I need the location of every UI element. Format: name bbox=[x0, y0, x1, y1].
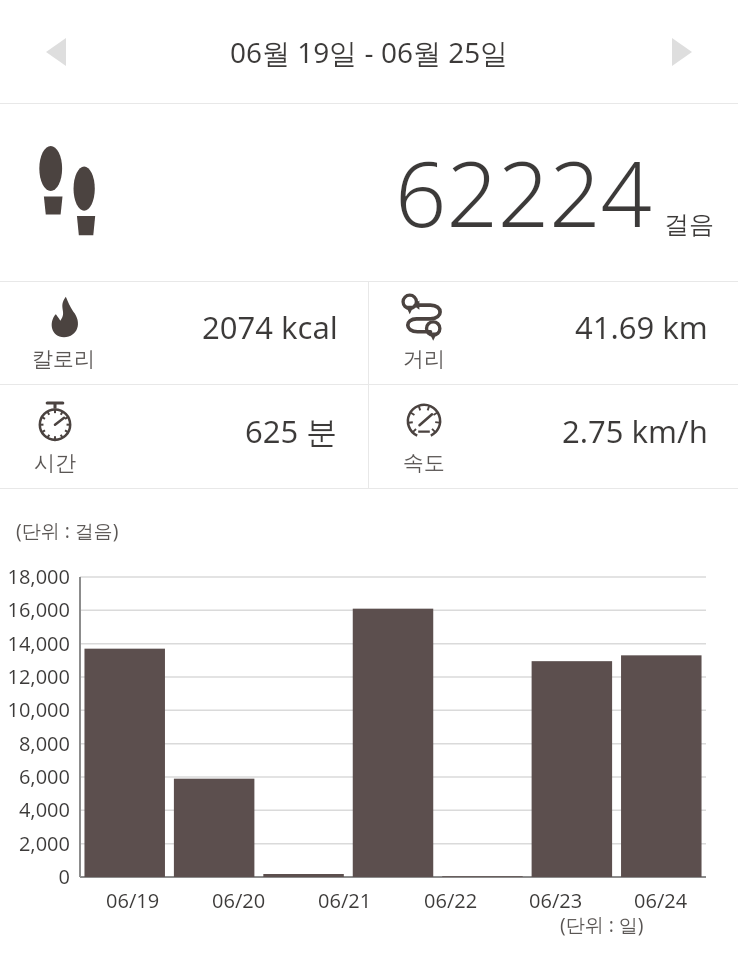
button[interactable]: 62224 bbox=[0, 104, 738, 281]
staticText: 41.69 km bbox=[575, 306, 708, 348]
staticText: 06월 19일 - 06월 25일 bbox=[230, 33, 509, 71]
button[interactable]: Previous week bbox=[20, 16, 92, 88]
staticText: 06/20 bbox=[212, 887, 266, 914]
staticText: 06/24 bbox=[634, 887, 688, 914]
staticText: 18,000 bbox=[0, 563, 70, 590]
staticText: 걸음 bbox=[664, 209, 714, 240]
staticText: (단위 : 걸음) bbox=[16, 518, 119, 544]
staticText: 2.75 km/h bbox=[562, 410, 708, 452]
staticText: 4,000 bbox=[0, 796, 70, 823]
staticText: 속도 bbox=[403, 450, 445, 476]
staticText: 62224 bbox=[395, 131, 652, 254]
staticText: 2,000 bbox=[0, 830, 70, 857]
staticText: 2074 kcal bbox=[202, 306, 338, 348]
staticText: 06/22 bbox=[424, 887, 478, 914]
button[interactable]: 속도 bbox=[369, 385, 738, 488]
staticText: 시간 bbox=[34, 450, 76, 476]
staticText: 12,000 bbox=[0, 663, 70, 690]
staticText: 6,000 bbox=[0, 763, 70, 790]
staticText: 06/19 bbox=[106, 887, 160, 914]
staticText: 16,000 bbox=[0, 596, 70, 623]
staticText: 거리 bbox=[403, 346, 445, 372]
staticText: 0 bbox=[0, 863, 70, 890]
staticText: 14,000 bbox=[0, 630, 70, 657]
staticText: 06/21 bbox=[318, 887, 372, 914]
button[interactable]: 거리 bbox=[369, 282, 738, 384]
button[interactable]: 칼로리 bbox=[0, 282, 368, 384]
staticText: (단위 : 일) bbox=[560, 912, 644, 938]
staticText: 10,000 bbox=[0, 696, 70, 723]
staticText: 625 분 bbox=[245, 410, 338, 452]
staticText: 칼로리 bbox=[32, 346, 95, 372]
staticText: 06/23 bbox=[529, 887, 583, 914]
button[interactable]: 시간 bbox=[0, 385, 368, 488]
staticText: 8,000 bbox=[0, 730, 70, 757]
button[interactable]: Next week bbox=[646, 16, 718, 88]
